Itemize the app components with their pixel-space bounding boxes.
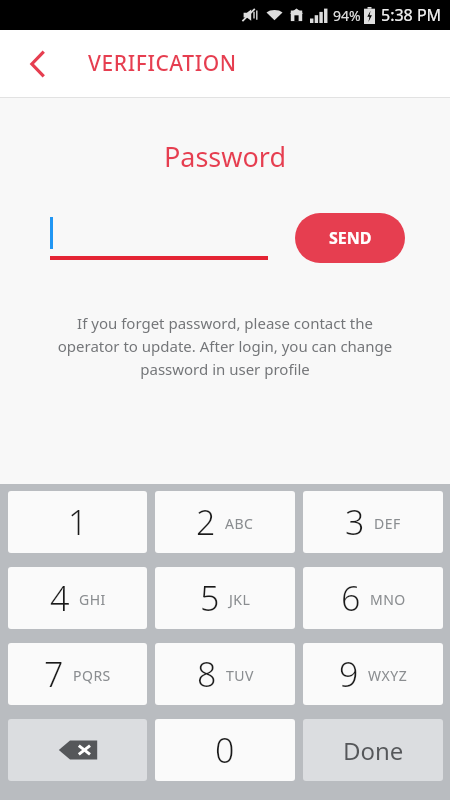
button[interactable]: 4 xyxy=(8,567,147,629)
button[interactable]: SEND xyxy=(295,213,405,263)
staticText: VERIFICATION xyxy=(88,49,237,78)
staticText: MNO xyxy=(370,590,406,609)
staticText: DEF xyxy=(374,514,401,533)
button[interactable]: 8 xyxy=(155,643,295,705)
staticText: 0 xyxy=(215,727,235,773)
staticText: JKL xyxy=(229,590,251,609)
staticText: 4 xyxy=(50,575,70,621)
button[interactable]: 5 xyxy=(155,567,295,629)
staticText: ABC xyxy=(225,514,254,533)
staticText: GHI xyxy=(79,590,106,609)
button[interactable]: 3 xyxy=(303,491,443,553)
staticText: PQRS xyxy=(73,666,111,685)
staticText: 6 xyxy=(341,575,361,621)
staticText: 2 xyxy=(196,499,216,545)
button[interactable]: 9 xyxy=(303,643,443,705)
button[interactable]: 6 xyxy=(303,567,443,629)
staticText: Done xyxy=(343,734,404,767)
button[interactable]: 1 xyxy=(8,491,147,553)
staticText: 5:38 PM xyxy=(381,4,442,26)
button[interactable]: 2 xyxy=(155,491,295,553)
staticText: SEND xyxy=(329,227,372,249)
staticText: TUV xyxy=(226,666,254,685)
button[interactable]: Done xyxy=(303,719,443,781)
staticText: 94% xyxy=(333,6,361,25)
staticText: WXYZ xyxy=(368,666,408,685)
button[interactable]: Back xyxy=(16,42,60,86)
staticText: 3 xyxy=(345,499,365,545)
staticText: Password xyxy=(0,138,450,175)
button[interactable]: Backspace xyxy=(8,719,147,781)
staticText: 7 xyxy=(44,651,64,697)
staticText: 8 xyxy=(197,651,217,697)
button[interactable]: 0 xyxy=(155,719,295,781)
staticText: If you forget password, please contact t… xyxy=(24,313,426,379)
button[interactable]: 7 xyxy=(8,643,147,705)
staticText: 5 xyxy=(200,575,220,621)
staticText: 9 xyxy=(339,651,359,697)
button[interactable] xyxy=(50,215,268,261)
staticText: 1 xyxy=(68,499,88,545)
